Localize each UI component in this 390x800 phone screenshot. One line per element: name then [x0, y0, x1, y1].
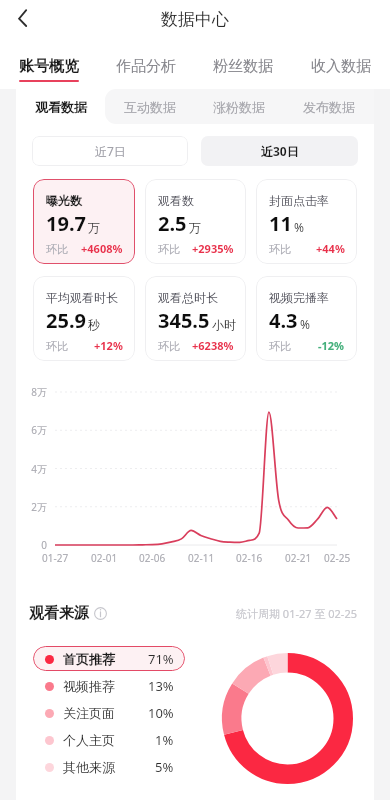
- staticText: 02-01: [91, 551, 118, 565]
- staticText: 作品分析: [116, 57, 176, 76]
- staticText: 环比: [46, 242, 68, 256]
- button[interactable]: 近7日: [32, 136, 188, 166]
- staticText: 首页推荐: [63, 651, 115, 667]
- staticText: 345.5: [158, 307, 210, 334]
- staticText: 1%: [155, 731, 174, 749]
- staticText: 小时: [212, 317, 236, 332]
- staticText: +2935%: [192, 241, 234, 256]
- staticText: 收入数据: [311, 57, 371, 76]
- staticText: %: [300, 316, 310, 332]
- staticText: 环比: [269, 339, 291, 353]
- staticText: 02-25: [324, 551, 351, 565]
- staticText: 71%: [148, 650, 174, 668]
- staticText: 环比: [158, 242, 180, 256]
- staticText: 02-06: [139, 551, 166, 565]
- staticText: 发布数据: [303, 99, 355, 115]
- staticText: 关注页面: [63, 705, 115, 721]
- staticText: 观看数: [158, 193, 194, 208]
- button[interactable]: 账号概览: [0, 45, 97, 89]
- staticText: 4万: [31, 462, 47, 476]
- staticText: 统计周期 01-27 至 02-25: [236, 606, 357, 621]
- button[interactable]: 曝光数: [33, 179, 135, 264]
- button[interactable]: 观看数据: [16, 89, 105, 124]
- button[interactable]: 视频推荐: [33, 673, 185, 698]
- staticText: +4608%: [81, 241, 123, 256]
- button[interactable]: 收入数据: [292, 45, 390, 89]
- staticText: 11: [269, 210, 292, 237]
- button[interactable]: 封面点击率: [256, 179, 357, 264]
- staticText: 秒: [88, 317, 100, 332]
- button[interactable]: 观看数: [145, 179, 246, 264]
- staticText: 02-11: [188, 551, 215, 565]
- staticText: 2万: [31, 500, 47, 514]
- staticText: 万: [88, 220, 100, 235]
- staticText: 02-21: [285, 551, 312, 565]
- staticText: 5%: [155, 758, 174, 776]
- staticText: 账号概览: [19, 57, 79, 76]
- button[interactable]: 互动数据: [105, 89, 194, 124]
- button[interactable]: 发布数据: [284, 89, 374, 124]
- staticText: 8万: [31, 385, 47, 399]
- staticText: 2.5: [158, 210, 187, 237]
- button[interactable]: 视频完播率: [256, 276, 357, 361]
- button[interactable]: 平均观看时长: [33, 276, 135, 361]
- staticText: 个人主页: [63, 732, 115, 748]
- button[interactable]: 作品分析: [97, 45, 194, 89]
- staticText: 13%: [148, 677, 174, 695]
- button[interactable]: 其他来源: [33, 754, 185, 779]
- staticText: 01-27: [42, 551, 69, 565]
- staticText: %: [294, 219, 304, 235]
- staticText: 环比: [46, 339, 68, 353]
- staticText: 10%: [148, 704, 174, 722]
- staticText: 6万: [31, 423, 47, 437]
- staticText: 封面点击率: [269, 193, 329, 208]
- staticText: 观看数据: [35, 99, 87, 115]
- staticText: 万: [189, 220, 201, 235]
- button[interactable]: Back: [4, 4, 34, 34]
- staticText: 曝光数: [46, 193, 82, 208]
- button[interactable]: 涨粉数据: [194, 89, 284, 124]
- staticText: 环比: [269, 242, 291, 256]
- button[interactable]: 个人主页: [33, 727, 185, 752]
- staticText: 其他来源: [63, 759, 115, 775]
- staticText: 25.9: [46, 307, 86, 334]
- staticText: 02-16: [236, 551, 263, 565]
- staticText: 平均观看时长: [46, 290, 118, 305]
- button[interactable]: 粉丝数据: [194, 45, 292, 89]
- staticText: 4.3: [269, 307, 298, 334]
- staticText: 0: [41, 538, 47, 552]
- staticText: 近30日: [261, 143, 299, 159]
- staticText: 近7日: [95, 143, 126, 159]
- staticText: -12%: [318, 338, 345, 353]
- button[interactable]: 近30日: [201, 136, 358, 166]
- staticText: 观看总时长: [158, 290, 218, 305]
- staticText: 数据中心: [161, 9, 229, 30]
- staticText: +6238%: [192, 338, 234, 353]
- button[interactable]: 关注页面: [33, 700, 185, 725]
- staticText: 环比: [158, 339, 180, 353]
- staticText: 视频推荐: [63, 678, 115, 694]
- staticText: +44%: [316, 241, 345, 256]
- staticText: 视频完播率: [269, 290, 329, 305]
- button[interactable]: 观看总时长: [145, 276, 246, 361]
- staticText: 观看来源: [29, 604, 89, 623]
- staticText: +12%: [94, 338, 123, 353]
- staticText: 19.7: [46, 210, 86, 237]
- staticText: 粉丝数据: [213, 57, 273, 76]
- button[interactable]: 首页推荐: [33, 646, 185, 671]
- staticText: 涨粉数据: [213, 99, 265, 115]
- staticText: 互动数据: [124, 99, 176, 115]
